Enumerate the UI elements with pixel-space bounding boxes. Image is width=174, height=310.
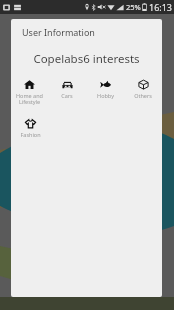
button[interactable]: Fashion [11,117,49,139]
staticText: Fashion [20,131,41,138]
staticText: User Information [22,26,95,38]
button[interactable]: Hobby [86,78,124,100]
button[interactable]: Home and Lifestyle [11,78,48,107]
staticText: Cars [61,92,73,99]
staticText: Hobby [97,92,114,99]
other: Cars [62,79,73,90]
staticText: 16:13 [149,1,173,13]
staticText: Others [134,92,152,99]
other: Hobby [100,79,111,90]
other: Home and Lifestyle [24,79,35,90]
staticText: 25% [126,2,141,12]
other: Fashion [25,118,36,129]
button[interactable]: Others [124,78,162,100]
staticText: Home and Lifestyle [16,92,43,106]
other: Others [138,79,149,90]
button[interactable]: Cars [48,78,86,100]
staticText: Copelabs6 interests [11,51,162,67]
